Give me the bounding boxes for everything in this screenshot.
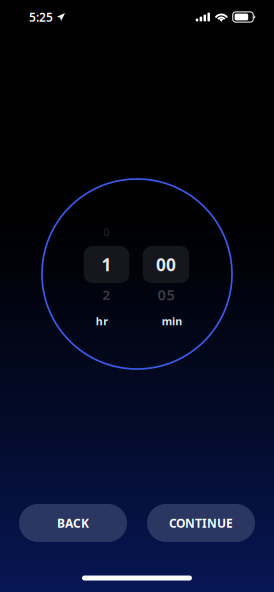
staticText: 1 bbox=[101, 253, 111, 276]
button[interactable]: CONTINUE bbox=[147, 504, 255, 542]
staticText: hr bbox=[96, 314, 108, 328]
staticText: 2 bbox=[102, 286, 110, 303]
staticText: 05 bbox=[157, 285, 174, 304]
button[interactable]: 00 bbox=[143, 246, 189, 283]
staticText: 00 bbox=[156, 253, 176, 276]
staticText: BACK bbox=[57, 515, 89, 531]
staticText: min bbox=[162, 314, 182, 328]
button[interactable]: 1 bbox=[84, 246, 129, 283]
staticText: 0 bbox=[103, 225, 109, 239]
staticText: 5:25 bbox=[29, 9, 53, 25]
staticText: CONTINUE bbox=[169, 515, 233, 531]
button[interactable]: BACK bbox=[19, 504, 127, 542]
